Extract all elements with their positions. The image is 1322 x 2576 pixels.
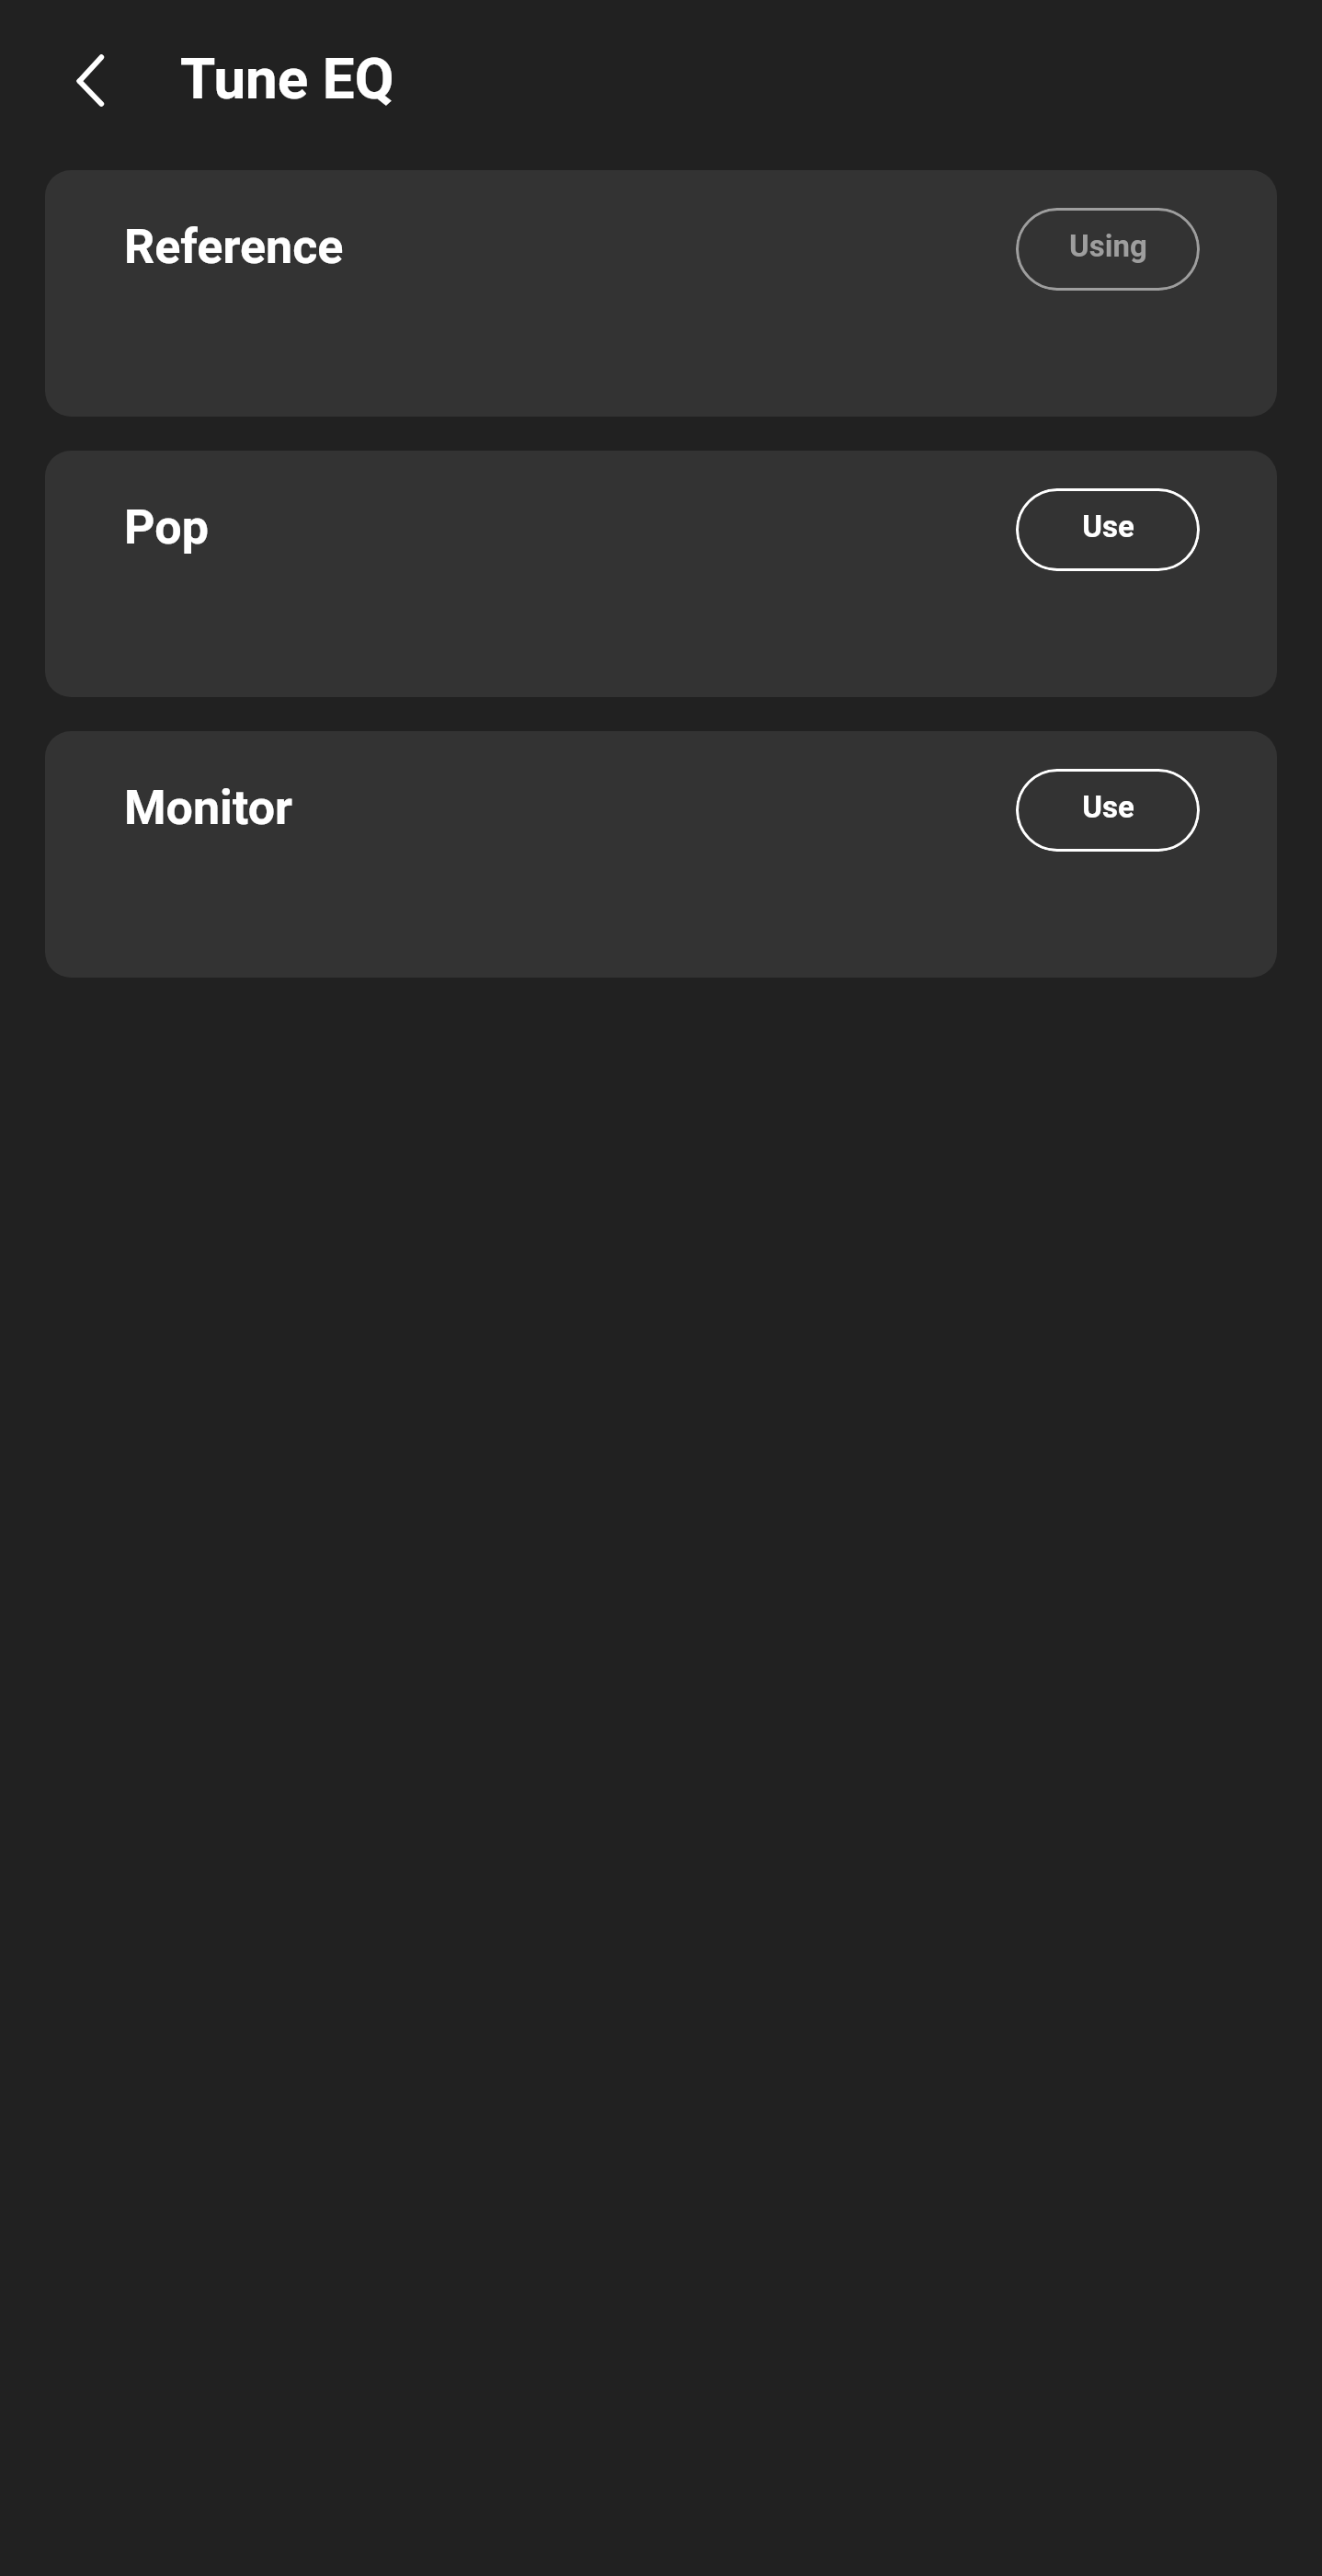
- staticText: Tune EQ: [180, 45, 394, 112]
- button[interactable]: Use: [1016, 488, 1200, 571]
- staticText: Reference: [124, 219, 344, 275]
- button[interactable]: Reference: [45, 170, 1277, 417]
- staticText: Using: [1069, 228, 1147, 264]
- staticText: Pop: [124, 499, 209, 555]
- button[interactable]: Using: [1016, 208, 1200, 291]
- staticText: Use: [1082, 509, 1134, 544]
- staticText: Monitor: [124, 780, 293, 836]
- button[interactable]: Monitor: [45, 731, 1277, 978]
- staticText: Use: [1082, 789, 1134, 825]
- button[interactable]: Pop: [45, 451, 1277, 697]
- button[interactable]: Use: [1016, 769, 1200, 852]
- button[interactable]: Back: [40, 29, 142, 131]
